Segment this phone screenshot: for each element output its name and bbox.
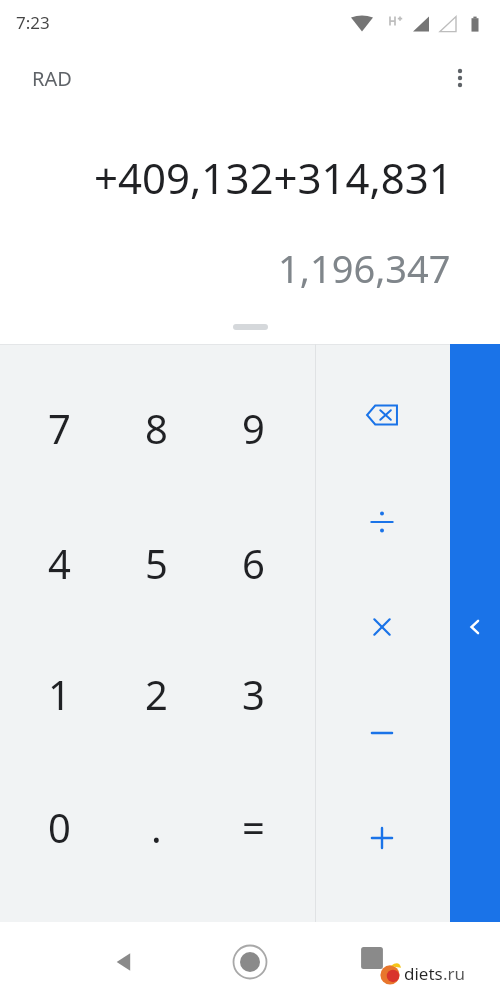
button[interactable]: 1,196,347 xyxy=(0,242,500,294)
staticText: = xyxy=(242,800,265,854)
button[interactable]: 2 xyxy=(108,646,204,742)
staticText: 5 xyxy=(145,536,168,590)
button[interactable]: = xyxy=(205,779,301,875)
button[interactable]: 4 xyxy=(11,515,107,611)
button[interactable]: 0 xyxy=(11,779,107,875)
button[interactable]: Divide xyxy=(337,480,427,564)
button[interactable]: +409,132+314,831 xyxy=(0,148,500,206)
staticText: . xyxy=(151,800,162,854)
staticText: 1,196,347 xyxy=(278,242,451,294)
staticText: 3 xyxy=(242,667,265,721)
button[interactable]: Multiply xyxy=(337,585,427,669)
button[interactable]: More options xyxy=(438,56,482,100)
button[interactable]: Back xyxy=(101,938,149,986)
button[interactable]: 7 xyxy=(11,380,107,476)
button[interactable]: 3 xyxy=(205,646,301,742)
button[interactable]: Expand advanced pad xyxy=(450,344,500,922)
button[interactable]: 8 xyxy=(108,380,204,476)
staticText: diets xyxy=(404,962,443,985)
button[interactable]: 5 xyxy=(108,515,204,611)
staticText: 4 xyxy=(48,536,71,590)
staticText: RAD xyxy=(32,65,72,92)
button[interactable]: 6 xyxy=(205,515,301,611)
button[interactable]: 1 xyxy=(11,646,107,742)
staticText: 9 xyxy=(242,401,265,455)
button[interactable]: Delete xyxy=(337,373,427,457)
button[interactable]: Recent apps xyxy=(348,934,396,982)
button[interactable]: . xyxy=(108,779,204,875)
staticText: 7 xyxy=(48,401,71,455)
staticText: +409,132+314,831 xyxy=(94,149,453,206)
staticText: 6 xyxy=(242,536,265,590)
staticText: 8 xyxy=(145,401,168,455)
button[interactable]: Add xyxy=(337,796,427,880)
staticText: .ru xyxy=(443,962,466,985)
staticText: 7:23 xyxy=(16,11,50,34)
button[interactable]: RAD xyxy=(22,59,82,98)
staticText: 0 xyxy=(48,800,71,854)
staticText: 1 xyxy=(48,667,71,721)
button[interactable]: Home xyxy=(226,938,274,986)
staticText: 2 xyxy=(145,667,168,721)
button[interactable]: Subtract xyxy=(337,691,427,775)
button[interactable]: 9 xyxy=(205,380,301,476)
